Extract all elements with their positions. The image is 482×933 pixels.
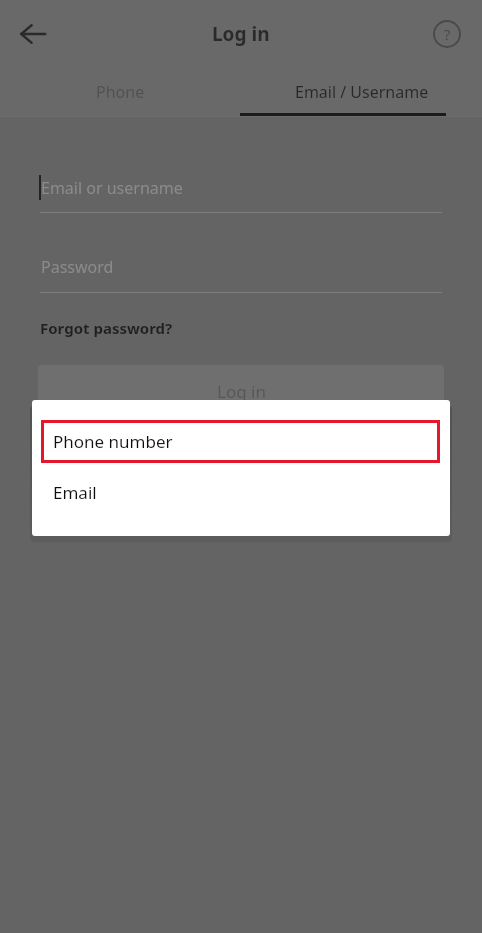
staticText: Email [53,481,97,504]
button[interactable]: Phone number [41,420,440,463]
staticText: Phone [96,81,145,103]
staticText: Log in [212,21,270,47]
button[interactable]: Email [32,463,450,536]
staticText: Log in [217,380,266,403]
button[interactable]: Email / Username [241,68,482,116]
staticText: Email or username [41,177,183,199]
staticText: Password [41,256,114,278]
staticText: ? [444,24,451,44]
staticText: Phone number [53,430,173,453]
button[interactable]: Back [12,13,54,55]
staticText: Forgot password? [40,318,173,338]
button[interactable]: Forgot password? [40,318,173,338]
button[interactable]: Help [430,17,464,51]
staticText: Email / Username [295,81,429,103]
button[interactable]: Log in [38,365,444,417]
